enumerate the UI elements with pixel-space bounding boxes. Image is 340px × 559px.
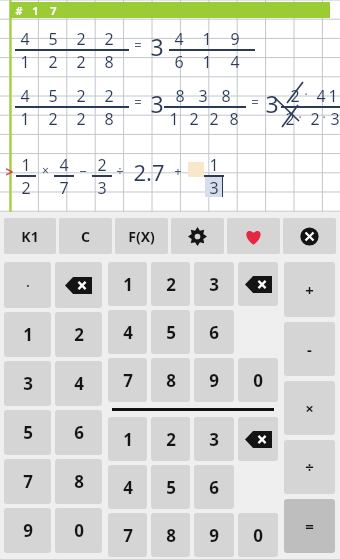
button[interactable]: 3	[194, 417, 234, 461]
staticText: 5	[48, 85, 58, 107]
button[interactable]: 4	[108, 310, 147, 354]
button[interactable]: 2	[55, 312, 102, 357]
button[interactable]: 6	[55, 410, 102, 455]
staticText: 4	[316, 85, 326, 107]
staticText: 7	[23, 470, 33, 493]
button[interactable]: 4	[108, 465, 147, 509]
button[interactable]: ÷	[284, 440, 335, 494]
button[interactable]: 3	[4, 361, 51, 406]
button[interactable]: 1	[108, 417, 147, 461]
staticText: 3	[97, 177, 107, 199]
staticText: 4	[74, 372, 84, 395]
button[interactable]: 7	[108, 358, 147, 402]
staticText: 2	[166, 428, 176, 451]
staticText: 3	[265, 88, 279, 119]
staticText: 6	[209, 321, 219, 344]
button[interactable]: Close	[283, 218, 336, 254]
button[interactable]: 5	[151, 310, 190, 354]
button[interactable]: 2	[151, 417, 190, 461]
button[interactable]: -	[284, 322, 335, 376]
button[interactable]: ×	[284, 381, 335, 435]
button[interactable]: 1	[4, 312, 51, 357]
staticText: 4	[174, 28, 184, 50]
staticText: 7	[123, 369, 133, 392]
button[interactable]: K1	[4, 218, 56, 254]
button[interactable]: 6	[194, 310, 234, 354]
button[interactable]: 0	[238, 513, 278, 557]
button[interactable]: Settings	[171, 218, 224, 254]
button[interactable]: 9	[4, 508, 51, 553]
button[interactable]: Backspace	[238, 262, 278, 306]
staticText: F(X)	[128, 227, 155, 246]
button[interactable]: +	[284, 262, 335, 317]
staticText: 3	[209, 428, 219, 451]
button[interactable]: 5	[4, 410, 51, 455]
staticText: 2	[48, 108, 58, 130]
staticText: 8	[104, 51, 114, 73]
button[interactable]: 1	[108, 262, 147, 306]
button[interactable]: F(X)	[115, 218, 168, 254]
staticText: >	[5, 162, 14, 181]
staticText: ·	[322, 109, 326, 125]
staticText: 7	[123, 524, 133, 547]
staticText: 2	[76, 28, 86, 50]
staticText: 6	[174, 51, 184, 73]
button[interactable]: 6	[194, 465, 234, 509]
button[interactable]: 8	[151, 358, 190, 402]
staticText: 1	[209, 154, 219, 176]
staticText: 2	[97, 154, 107, 176]
staticText: 8	[221, 85, 231, 107]
staticText: 8	[166, 524, 176, 547]
staticText: 8	[104, 108, 114, 130]
button[interactable]: 9	[194, 358, 234, 402]
staticText: 1	[20, 108, 30, 130]
staticText: 0	[253, 524, 263, 547]
staticText: 3	[209, 273, 219, 296]
button[interactable]: Favorite	[227, 218, 280, 254]
staticText: 1	[23, 323, 33, 346]
staticText: 5	[23, 421, 33, 444]
button[interactable]: Backspace	[55, 262, 102, 308]
staticText: =	[134, 93, 142, 111]
staticText: 2	[209, 108, 219, 130]
staticText: 4	[230, 51, 240, 73]
staticText: +	[305, 280, 314, 300]
staticText: 4	[59, 154, 69, 176]
staticText: 1	[202, 28, 212, 50]
staticText: 2	[76, 108, 86, 130]
staticText: 1	[21, 154, 31, 176]
button[interactable]: =	[284, 499, 335, 553]
button[interactable]: 7	[108, 513, 147, 557]
staticText: 2	[48, 51, 58, 73]
button[interactable]: 5	[151, 465, 190, 509]
button[interactable]: Backspace	[238, 417, 278, 461]
button[interactable]: ·	[4, 262, 51, 308]
staticText: 1	[32, 3, 39, 18]
staticText: ·	[298, 109, 302, 125]
staticText: ÷	[305, 457, 314, 477]
staticText: 4	[20, 85, 30, 107]
button[interactable]: 8	[55, 459, 102, 504]
staticText: 4	[123, 476, 133, 499]
staticText: 2	[189, 108, 199, 130]
staticText: C	[81, 227, 90, 246]
staticText: 2	[21, 177, 31, 199]
staticText: −	[79, 162, 87, 180]
staticText: =	[134, 36, 142, 54]
button[interactable]: 8	[151, 513, 190, 557]
staticText: ÷	[116, 162, 124, 180]
button[interactable]: 0	[238, 358, 278, 402]
button[interactable]: 3	[194, 262, 234, 306]
staticText: 8	[74, 470, 84, 493]
staticText: 1	[202, 51, 212, 73]
button[interactable]: 2	[151, 262, 190, 306]
button[interactable]: C	[59, 218, 112, 254]
staticText: ·	[26, 277, 30, 293]
staticText: 2	[74, 323, 84, 346]
button[interactable]: 4	[55, 361, 102, 406]
staticText: 4	[123, 321, 133, 344]
button[interactable]: 9	[194, 513, 234, 557]
button[interactable]: 7	[4, 459, 51, 504]
button[interactable]: 0	[55, 508, 102, 553]
staticText: 6	[74, 421, 84, 444]
